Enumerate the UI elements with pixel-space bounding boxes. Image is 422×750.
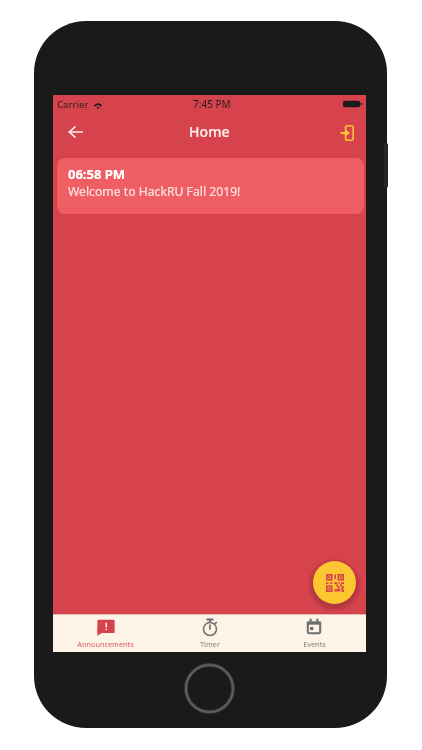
button[interactable]: Announcements [53, 615, 158, 652]
button[interactable]: Timer [158, 615, 262, 652]
staticText: Timer [200, 639, 220, 649]
staticText: Home [189, 122, 230, 141]
staticText: Welcome to HackRU Fall 2019! [68, 183, 241, 200]
button[interactable]: Back [59, 116, 91, 148]
staticText: Events [303, 639, 326, 649]
button[interactable]: 06:58 PM [57, 158, 364, 214]
button[interactable]: Log out [333, 119, 361, 147]
button[interactable]: Scan QR code [313, 561, 356, 604]
staticText: Announcements [77, 639, 134, 649]
staticText: 7:45 PM [193, 97, 231, 111]
button[interactable]: Events [262, 615, 366, 652]
staticText: 06:58 PM [68, 165, 126, 183]
staticText: Carrier [57, 98, 89, 111]
